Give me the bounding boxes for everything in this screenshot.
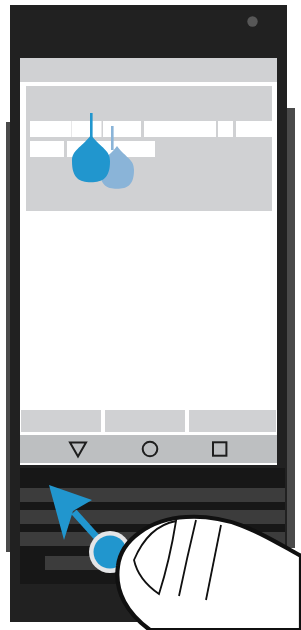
button[interactable]: Swipe up gesture on phone illustration <box>0 0 301 630</box>
